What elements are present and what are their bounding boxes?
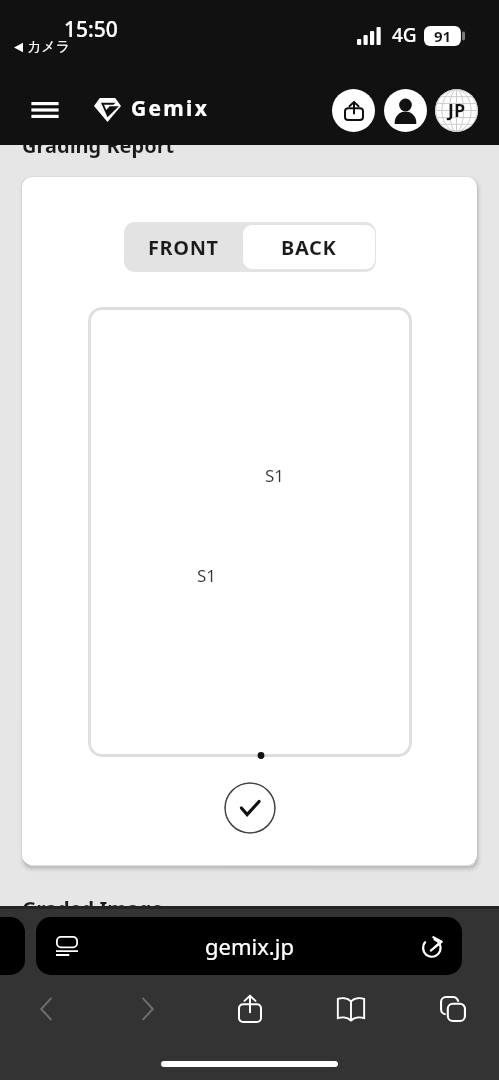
- staticText: 4G: [392, 22, 417, 48]
- staticText: Grading Report: [22, 132, 175, 159]
- button[interactable]: Forward: [124, 985, 172, 1033]
- staticText: Graded Image: [22, 895, 164, 922]
- staticText: BACK: [281, 234, 337, 261]
- button[interactable]: Share: [226, 985, 274, 1033]
- button[interactable]: Tabs: [429, 985, 477, 1033]
- staticText: 15:50: [64, 15, 118, 44]
- button[interactable]: Menu: [21, 86, 69, 134]
- button[interactable]: gemix.jp: [36, 917, 462, 975]
- button[interactable]: BACK: [243, 225, 375, 269]
- staticText: Gemix: [131, 94, 210, 123]
- staticText: カメラ: [27, 38, 70, 56]
- button[interactable]: FRONT: [124, 222, 243, 272]
- button[interactable]: Language JP: [435, 89, 478, 132]
- staticText: FRONT: [148, 234, 219, 261]
- button[interactable]: Reload: [414, 927, 452, 965]
- button[interactable]: Back: [22, 985, 70, 1033]
- button[interactable]: Share: [332, 89, 375, 132]
- button[interactable]: Account: [384, 89, 427, 132]
- staticText: S1: [197, 564, 217, 587]
- staticText: gemix.jp: [205, 931, 294, 961]
- staticText: JP: [448, 98, 466, 123]
- button[interactable]: Back to Camera: [14, 38, 70, 56]
- button[interactable]: Page settings: [48, 927, 86, 965]
- staticText: 91: [424, 26, 461, 46]
- button[interactable]: Confirm: [224, 782, 276, 834]
- staticText: S1: [265, 464, 285, 487]
- button[interactable]: Bookmarks: [327, 985, 375, 1033]
